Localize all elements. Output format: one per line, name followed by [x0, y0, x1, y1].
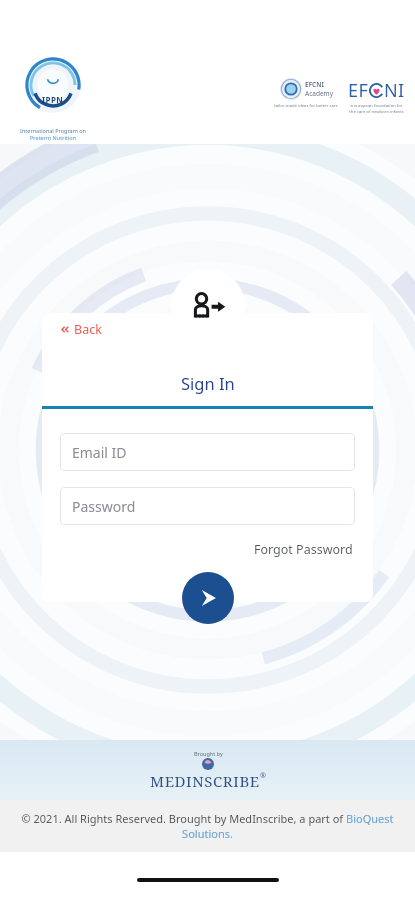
staticText: Brought by	[194, 750, 223, 757]
other: Sign in user	[171, 269, 245, 343]
staticText: International Program on	[20, 127, 86, 134]
staticText: MEDINSCRIBE	[150, 771, 260, 791]
staticText: a european foundation for	[350, 103, 403, 109]
staticText: EF	[348, 78, 369, 103]
button[interactable]: Password	[60, 487, 355, 525]
staticText: IPPN	[42, 94, 64, 105]
staticText: tailor-made ideas for better care	[274, 103, 338, 109]
button[interactable]: Forgot Password	[252, 539, 355, 560]
staticText: Back	[74, 321, 102, 338]
staticText: EFCNI	[305, 80, 324, 89]
staticText: the care of newborn infants	[349, 109, 404, 115]
staticText: Sign In	[181, 372, 235, 394]
button[interactable]: Submit	[182, 572, 234, 624]
staticText: Email ID	[72, 443, 127, 462]
button[interactable]: Back	[42, 313, 120, 346]
staticText: Preterm Nutrition	[30, 134, 76, 141]
staticText: Password	[72, 497, 136, 516]
staticText: ®	[260, 771, 266, 781]
button[interactable]: Email ID	[60, 433, 355, 471]
staticText: Academy	[305, 89, 333, 98]
staticText: Forgot Password	[254, 541, 353, 558]
staticText: NI	[384, 78, 405, 103]
staticText: © 2021. All Rights Reserved. Brought by …	[12, 811, 403, 841]
